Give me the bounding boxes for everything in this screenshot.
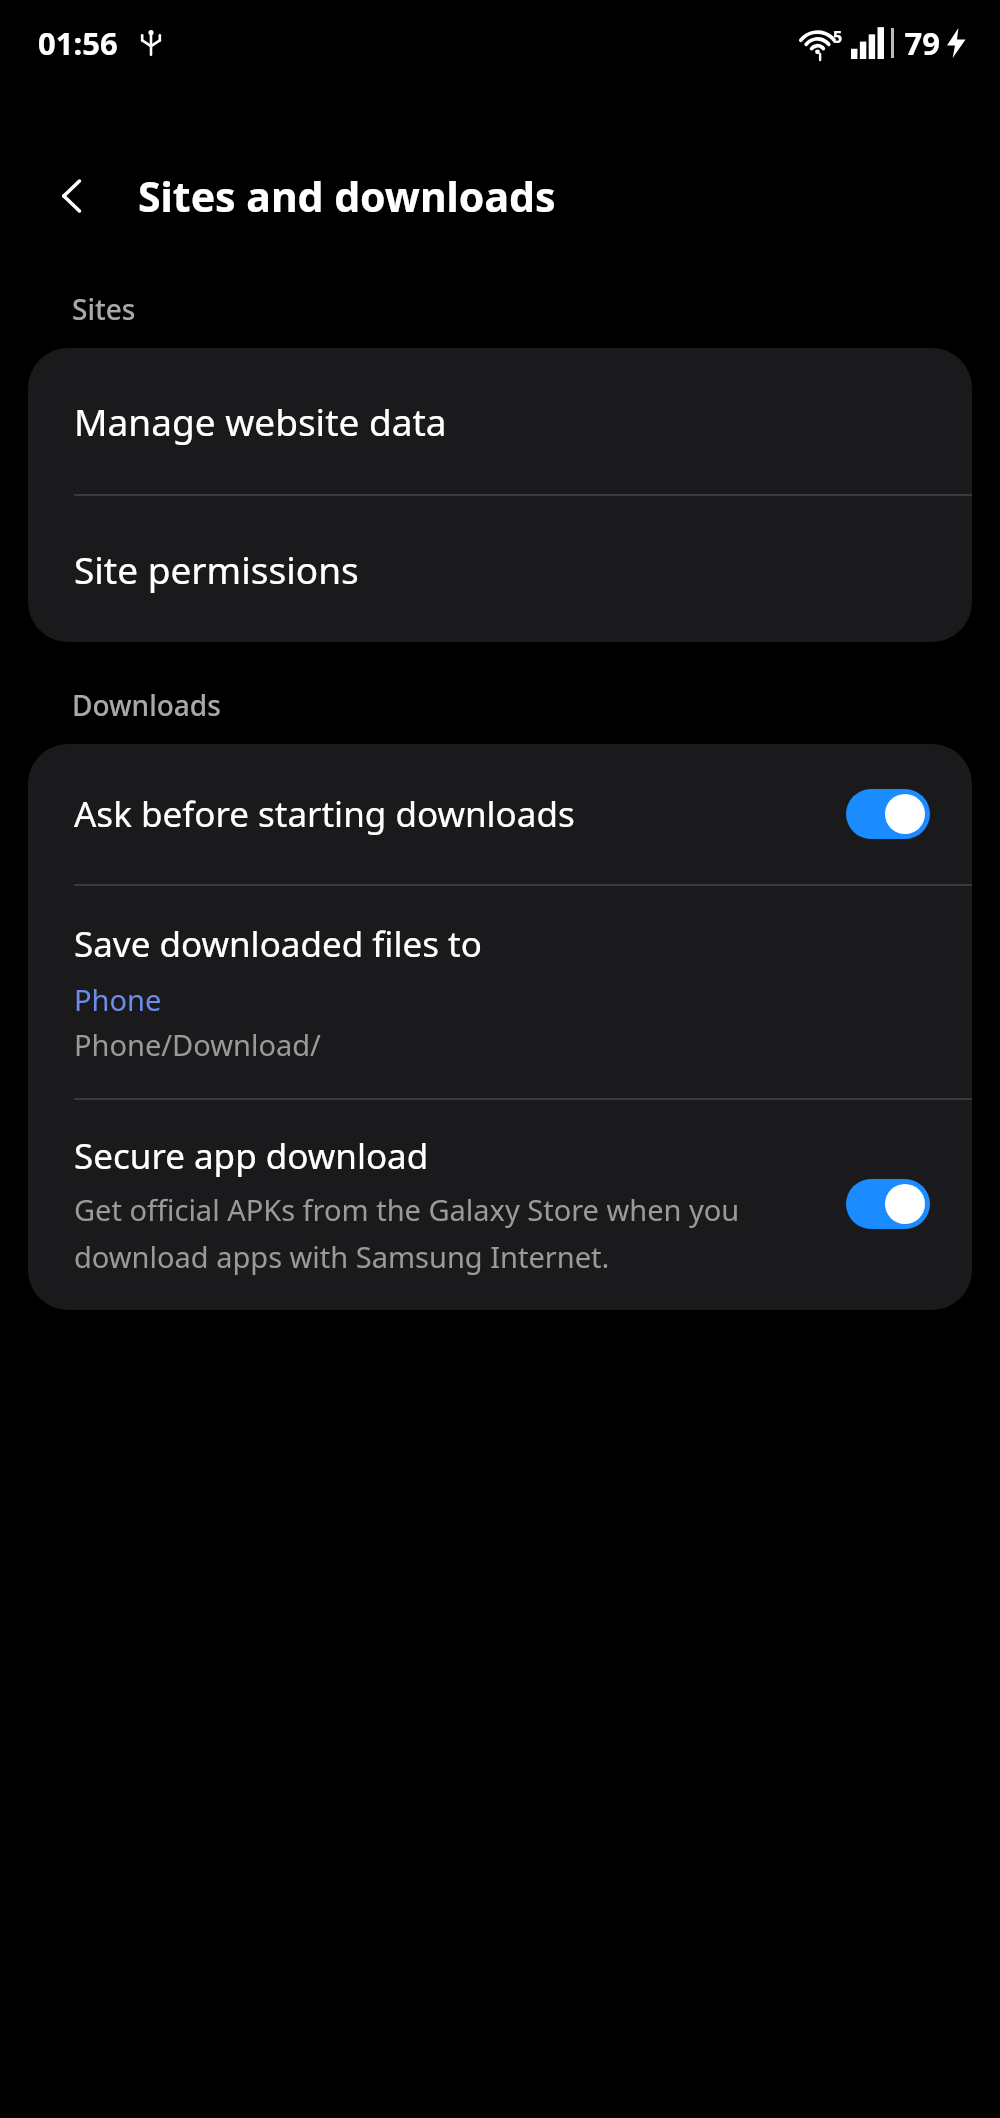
staticText: Save downloaded files to (74, 920, 482, 968)
staticText: Secure app download (74, 1132, 429, 1180)
staticText: Phone (74, 980, 162, 1019)
staticText: 79 (904, 22, 940, 64)
button[interactable]: Manage website data (28, 348, 972, 494)
button[interactable]: Secure app download (28, 1100, 972, 1310)
staticText: Ask before starting downloads (74, 790, 830, 838)
staticText: Sites (72, 290, 136, 328)
staticText: Site permissions (74, 544, 359, 594)
button[interactable]: Toggle (846, 789, 930, 839)
button[interactable]: Ask before starting downloads (28, 744, 972, 884)
staticText: Manage website data (74, 396, 447, 446)
button[interactable]: Toggle (846, 1179, 930, 1229)
staticText: Sites and downloads (138, 168, 556, 224)
staticText: Get official APKs from the Galaxy Store … (74, 1190, 828, 1276)
staticText: Phone/Download/ (74, 1025, 321, 1064)
button[interactable]: Site permissions (28, 496, 972, 642)
staticText: 5 (833, 26, 843, 48)
staticText: 01:56 (38, 22, 118, 64)
button[interactable]: Back (40, 162, 108, 230)
staticText: Downloads (72, 686, 221, 724)
button[interactable]: Save downloaded files to (28, 886, 972, 1098)
